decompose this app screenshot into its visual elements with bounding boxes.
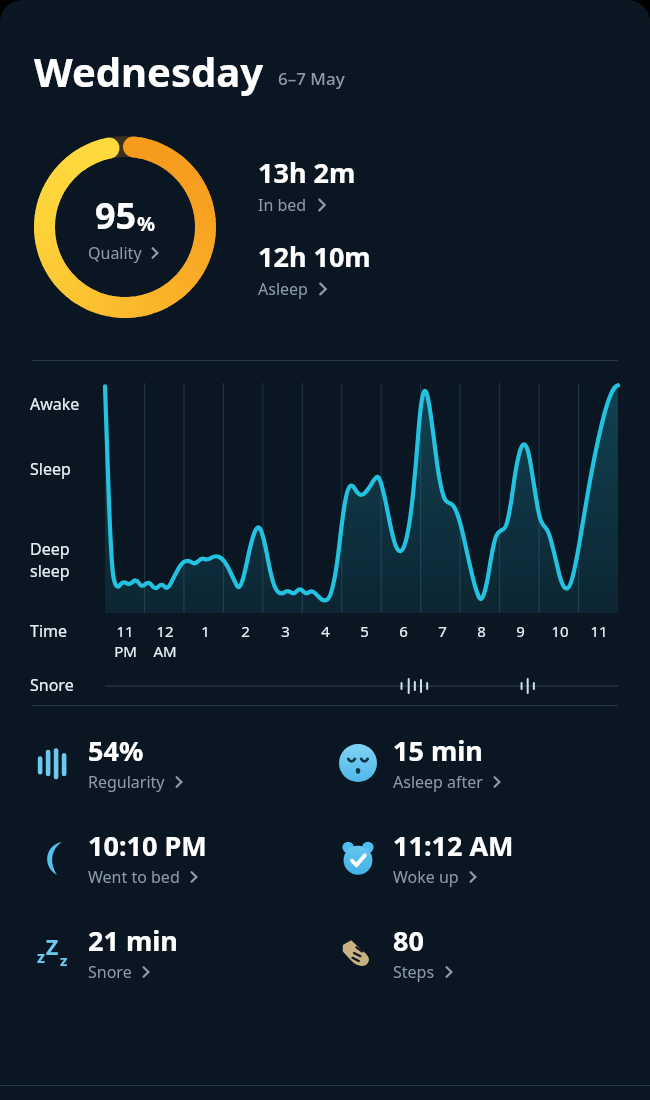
staticText: 10:10 PM (88, 827, 207, 864)
other: Asleep after (339, 744, 377, 782)
staticText: 8 (477, 621, 486, 641)
staticText: 6–7 May (278, 67, 345, 90)
staticText: 1 (201, 621, 210, 641)
staticText: 6 (399, 621, 408, 641)
staticText: Quality (88, 242, 142, 264)
button[interactable]: Regularity (30, 732, 187, 793)
button[interactable]: 13h 2m (258, 154, 356, 216)
staticText: 7 (438, 621, 447, 641)
staticText: 15 min (393, 732, 483, 769)
other: Regularity (33, 743, 73, 783)
staticText: sleep (30, 560, 70, 582)
staticText: In bed (258, 194, 307, 216)
staticText: 54% (88, 732, 144, 769)
staticText: 12 (156, 621, 174, 641)
staticText: Awake (30, 393, 80, 415)
staticText: 10 (551, 621, 569, 641)
staticText: 95 (95, 191, 137, 240)
staticText: Snore (88, 961, 132, 983)
staticText: Asleep (258, 278, 308, 300)
staticText: 11 (116, 621, 134, 641)
other: Snore (31, 931, 75, 975)
staticText: 12h 10m (258, 238, 371, 275)
staticText: Asleep after (393, 771, 483, 793)
staticText: 3 (281, 621, 290, 641)
staticText: z (60, 950, 68, 970)
staticText: 4 (321, 621, 330, 641)
staticText: 11:12 AM (393, 827, 514, 864)
staticText: 11 (590, 621, 608, 641)
other: Woke up (339, 839, 377, 877)
staticText: Z (46, 933, 59, 962)
staticText: Snore (30, 674, 74, 696)
button[interactable]: Steps (335, 922, 457, 983)
staticText: 21 min (88, 922, 178, 959)
staticText: 80 (393, 922, 424, 959)
button[interactable]: Went to bed (30, 827, 207, 888)
staticText: 13h 2m (258, 154, 356, 191)
staticText: PM (114, 641, 137, 661)
staticText: 5 (360, 621, 369, 641)
staticText: 2 (241, 621, 250, 641)
button[interactable] (105, 383, 618, 613)
staticText: % (137, 210, 156, 237)
staticText: Steps (393, 961, 435, 983)
button[interactable]: Snore (30, 922, 178, 983)
button[interactable]: Woke up (335, 827, 514, 888)
button[interactable]: 95 (32, 134, 218, 320)
staticText: Wednesday (34, 44, 264, 98)
staticText: Regularity (88, 771, 165, 793)
other: Went to bed (33, 838, 73, 878)
other: Steps (338, 933, 378, 973)
staticText: Time (30, 620, 68, 642)
button[interactable]: 12h 10m (258, 238, 371, 300)
staticText: z (37, 946, 45, 968)
staticText: Woke up (393, 866, 459, 888)
staticText: AM (153, 641, 177, 661)
staticText: Sleep (30, 458, 71, 480)
staticText: 9 (516, 621, 525, 641)
staticText: Deep (30, 538, 70, 560)
staticText: Went to bed (88, 866, 180, 888)
button[interactable]: Asleep after (335, 732, 505, 793)
